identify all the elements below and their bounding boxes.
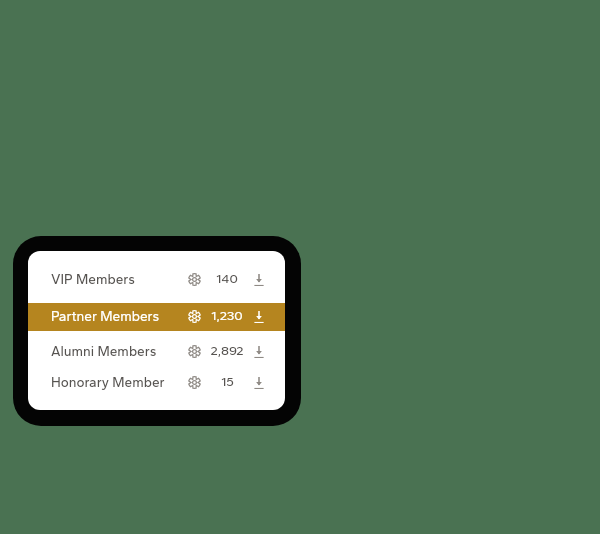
button[interactable] xyxy=(28,265,285,293)
button[interactable]: Settings xyxy=(184,372,204,392)
button[interactable]: Settings xyxy=(184,341,204,361)
button[interactable]: Download xyxy=(249,270,269,290)
staticText: 140 xyxy=(216,271,238,287)
staticText: Alumni Members xyxy=(51,343,157,359)
button[interactable] xyxy=(28,302,285,330)
button[interactable]: Download xyxy=(249,342,269,362)
staticText: VIP Members xyxy=(51,271,136,287)
button[interactable] xyxy=(28,337,285,365)
staticText: Honorary Member xyxy=(51,374,165,390)
staticText: Partner Members xyxy=(51,308,160,324)
button[interactable] xyxy=(28,368,285,396)
button[interactable]: Settings xyxy=(184,306,204,326)
staticText: 15 xyxy=(221,374,234,390)
staticText: 1,230 xyxy=(211,308,243,324)
button[interactable]: Download xyxy=(249,307,269,327)
button[interactable]: Settings xyxy=(184,269,204,289)
button[interactable]: Download xyxy=(249,373,269,393)
staticText: 2,892 xyxy=(210,343,244,359)
